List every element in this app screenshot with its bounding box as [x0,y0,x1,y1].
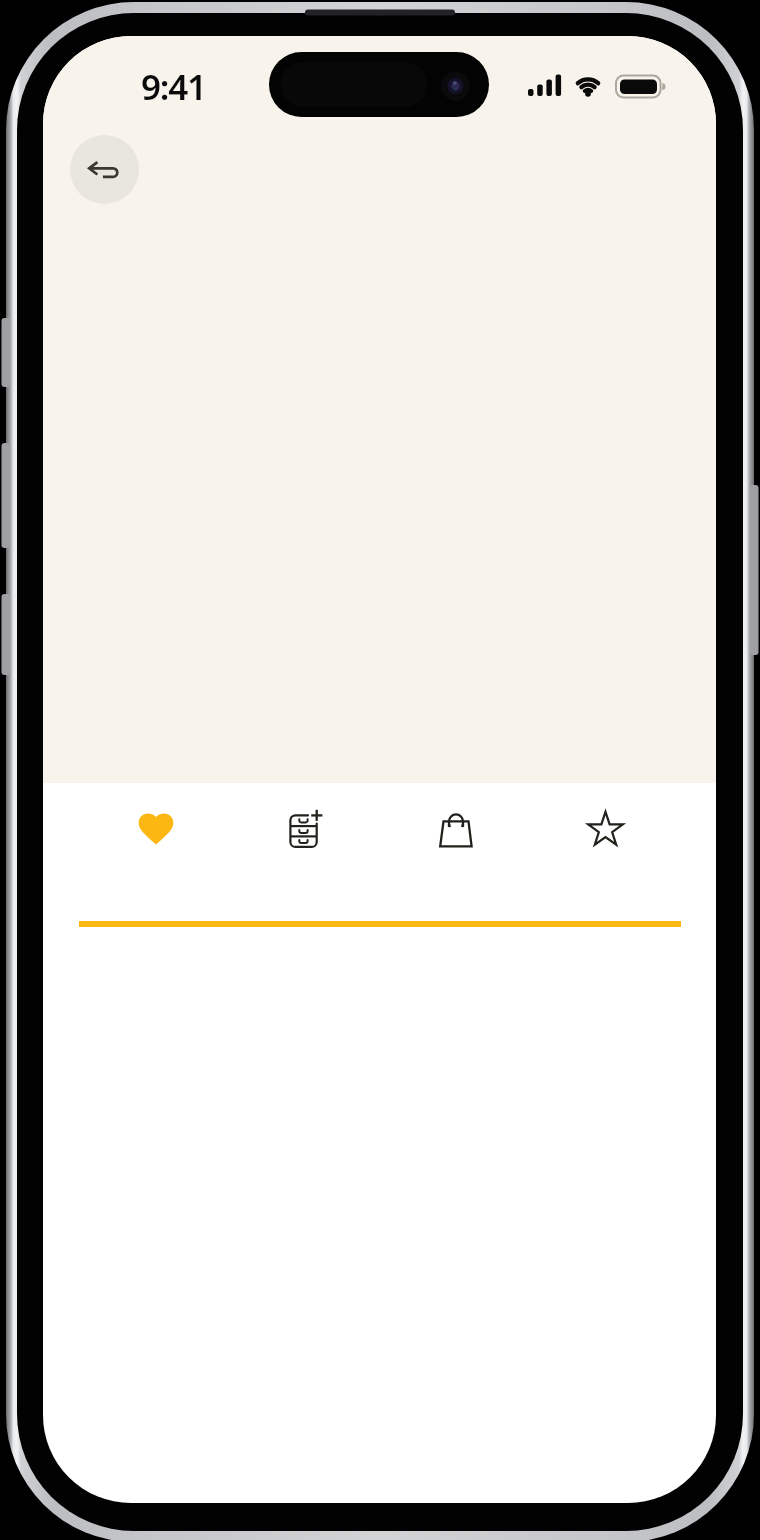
button[interactable] [550,787,660,871]
button[interactable] [248,787,358,871]
staticText: 9:41 [141,63,206,111]
button[interactable] [70,135,139,204]
button[interactable] [400,787,510,871]
button[interactable] [101,787,211,871]
